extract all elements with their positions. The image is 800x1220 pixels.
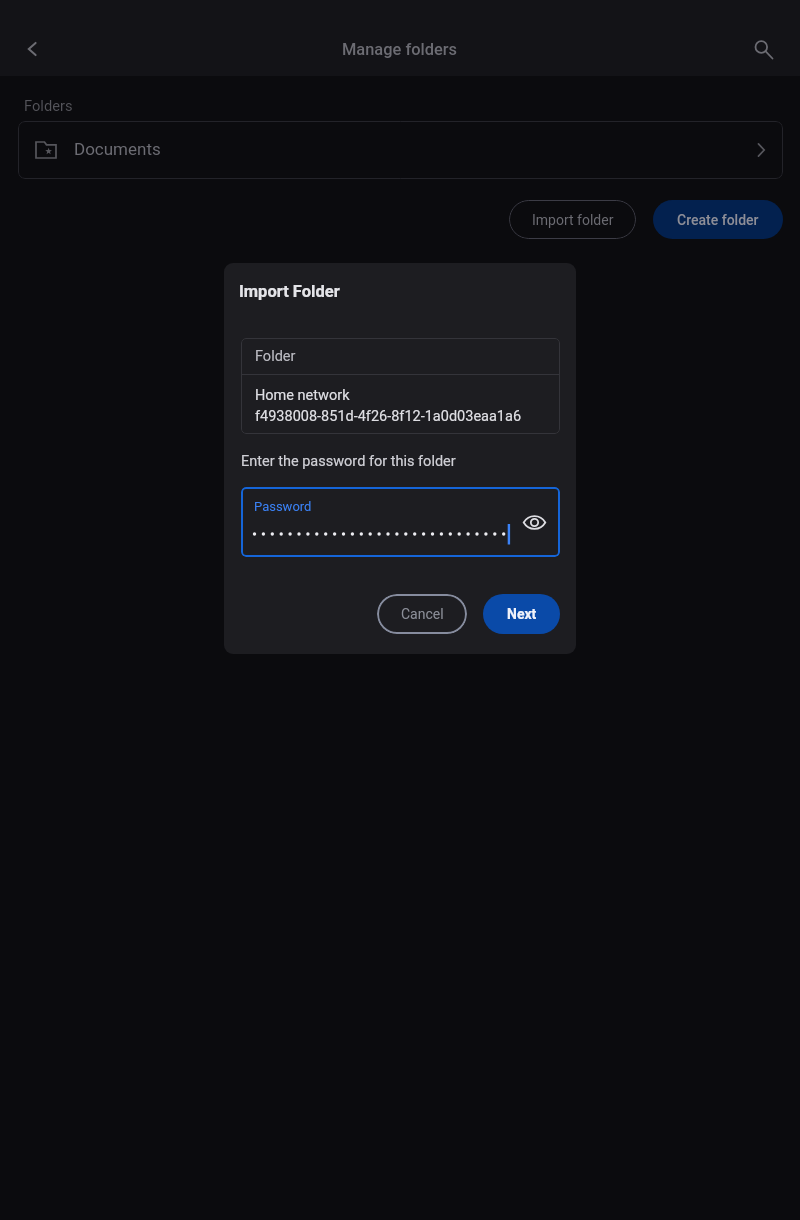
staticText: Manage folders — [342, 40, 458, 59]
staticText: Folder — [255, 348, 296, 365]
staticText: Next — [507, 606, 537, 622]
button[interactable]: Import folder — [509, 200, 636, 239]
button[interactable]: Folder — [241, 338, 560, 434]
button[interactable]: Next — [483, 594, 560, 634]
button[interactable]: Cancel — [377, 594, 467, 634]
staticText: Password — [254, 499, 312, 514]
button[interactable]: Create folder — [653, 200, 783, 239]
staticText: Folders — [24, 97, 73, 114]
staticText: Create folder — [677, 212, 759, 228]
button[interactable]: Back — [8, 25, 56, 73]
button[interactable]: Show password — [516, 504, 552, 540]
staticText: Cancel — [401, 606, 444, 622]
staticText: f4938008-851d-4f26-8f12-1a0d03eaa1a6 — [255, 408, 522, 425]
staticText: Enter the password for this folder — [241, 453, 456, 470]
staticText: Import folder — [532, 212, 614, 228]
button[interactable]: Search — [737, 25, 785, 73]
staticText: Documents — [74, 139, 161, 159]
button[interactable]: Documents — [18, 121, 783, 179]
staticText: Import Folder — [239, 282, 340, 301]
staticText: Home network — [255, 387, 350, 404]
